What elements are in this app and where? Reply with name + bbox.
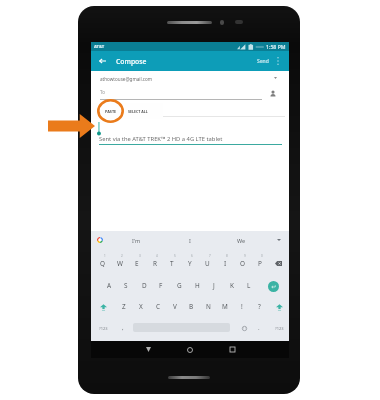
staticText: G <box>177 281 182 290</box>
button[interactable]: W <box>112 255 128 272</box>
staticText: 5 <box>174 254 176 258</box>
staticText: V <box>173 302 177 311</box>
staticText: ?123 <box>275 326 284 331</box>
staticText: I <box>224 259 227 268</box>
button[interactable]: I <box>217 255 233 272</box>
button[interactable]: I <box>176 231 204 249</box>
staticText: S <box>124 281 128 290</box>
staticText: W <box>117 259 123 268</box>
staticText: 2 <box>121 254 123 258</box>
staticText: L <box>247 281 251 290</box>
button[interactable]: Shift <box>96 299 111 315</box>
staticText: Compose <box>116 57 147 66</box>
staticText: PASTE <box>105 109 117 114</box>
staticText: 1:58 PM <box>266 43 286 50</box>
button[interactable]: D <box>136 277 152 294</box>
staticText: U <box>205 259 210 268</box>
staticText: A <box>107 281 112 290</box>
staticText: Q <box>100 259 105 268</box>
staticText: F <box>159 281 163 290</box>
button[interactable]: V <box>167 298 183 315</box>
button[interactable]: ! <box>234 298 250 315</box>
button[interactable]: T <box>164 255 180 272</box>
button[interactable]: S <box>118 277 134 294</box>
staticText: 3 <box>139 254 141 258</box>
staticText: J <box>213 281 215 290</box>
button[interactable]: Z <box>116 298 132 315</box>
staticText: 7 <box>209 254 211 258</box>
button[interactable]: P <box>252 255 268 272</box>
button[interactable]: Enter <box>265 278 282 294</box>
button[interactable]: M <box>217 298 233 315</box>
button[interactable]: J <box>206 277 222 294</box>
staticText: ? <box>258 302 261 311</box>
staticText: AT&T <box>94 44 105 50</box>
button[interactable]: athowtouse@gmail.com <box>91 71 289 99</box>
staticText: athowtouse@gmail.com <box>100 76 153 82</box>
staticText: I <box>189 237 191 244</box>
staticText: I'm <box>132 237 141 244</box>
staticText: 6 <box>191 254 193 258</box>
staticText: K <box>230 281 234 290</box>
staticText: M <box>222 302 228 311</box>
button[interactable]: N <box>200 298 216 315</box>
button[interactable]: E <box>129 255 145 272</box>
staticText: Sent via the AT&T TREK™ 2 HD a 4G LTE ta… <box>99 135 223 143</box>
button[interactable]: Recent apps <box>222 341 242 358</box>
button[interactable]: Y <box>182 255 198 272</box>
staticText: X <box>139 302 143 311</box>
button[interactable]: L <box>241 277 257 294</box>
staticText: We <box>237 237 246 244</box>
button[interactable]: K <box>224 277 240 294</box>
button[interactable]: Back <box>94 51 111 71</box>
button[interactable]: ?123 <box>271 320 287 336</box>
staticText: ?123 <box>99 326 108 331</box>
button[interactable]: Backspace <box>270 254 286 272</box>
staticText: To <box>100 89 105 95</box>
staticText: H <box>195 281 200 290</box>
staticText: 8 <box>226 254 228 258</box>
button[interactable]: O <box>234 255 250 272</box>
staticText: B <box>189 302 194 311</box>
button[interactable]: We <box>227 231 255 249</box>
button[interactable]: PASTE <box>100 104 122 119</box>
button[interactable]: C <box>150 298 166 315</box>
staticText: 1 <box>104 254 106 258</box>
button[interactable]: F <box>153 277 169 294</box>
staticText: SELECT ALL <box>128 109 148 114</box>
staticText: ! <box>241 302 243 311</box>
button[interactable]: B <box>183 298 199 315</box>
button[interactable]: Google <box>97 237 103 243</box>
button[interactable]: ?123 <box>95 320 111 336</box>
staticText: . <box>258 324 260 332</box>
button[interactable]: Q <box>94 255 110 272</box>
staticText: 4 <box>156 254 158 258</box>
button[interactable]: Send <box>254 51 272 71</box>
button[interactable]: . <box>253 320 265 336</box>
staticText: Y <box>188 259 192 268</box>
button[interactable]: Emoji <box>238 320 250 336</box>
button[interactable]: , <box>117 320 129 336</box>
button[interactable]: Shift <box>272 299 287 315</box>
staticText: , <box>122 324 124 332</box>
staticText: R <box>153 259 157 268</box>
button[interactable]: U <box>199 255 215 272</box>
button[interactable]: ? <box>251 298 267 315</box>
button[interactable]: Back <box>138 341 158 358</box>
staticText: 0 <box>261 254 263 258</box>
button[interactable]: SELECT ALL <box>124 104 152 119</box>
button[interactable]: H <box>189 277 205 294</box>
button[interactable]: Home <box>180 341 200 358</box>
button[interactable]: A <box>101 277 117 294</box>
button[interactable]: More options <box>271 51 284 71</box>
button[interactable]: R <box>147 255 163 272</box>
button[interactable]: I'm <box>122 231 150 249</box>
button[interactable]: G <box>171 277 187 294</box>
staticText: O <box>240 259 245 268</box>
button[interactable]: X <box>133 298 149 315</box>
staticText: E <box>135 259 139 268</box>
button[interactable]: More suggestions <box>271 231 287 249</box>
staticText: N <box>206 302 211 311</box>
staticText: T <box>170 259 174 268</box>
